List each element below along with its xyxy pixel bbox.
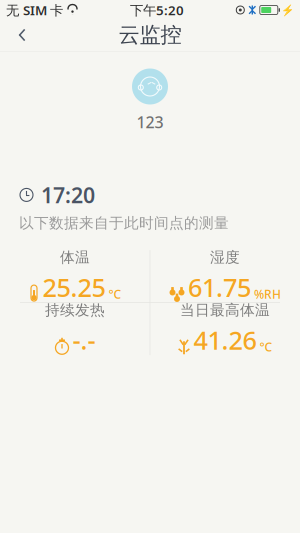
- button[interactable]: 湿度: [150, 248, 300, 304]
- button[interactable]: 持续发热: [0, 301, 150, 357]
- staticText: 17:20: [41, 181, 95, 209]
- button[interactable]: 当日最高体温: [150, 301, 300, 357]
- staticText: °C: [108, 286, 121, 302]
- staticText: °C: [259, 339, 272, 355]
- staticText: 下午5:20: [130, 1, 184, 19]
- staticText: 123: [136, 111, 163, 133]
- staticText: 云监控: [118, 22, 181, 48]
- staticText: 41.26: [193, 323, 256, 357]
- staticText: %RH: [254, 286, 281, 302]
- staticText: ⚡: [281, 4, 294, 16]
- button[interactable]: 返回: [0, 20, 44, 50]
- staticText: 当日最高体温: [180, 301, 270, 319]
- staticText: 持续发热: [45, 301, 105, 319]
- staticText: 体温: [60, 248, 90, 266]
- staticText: 25.25: [42, 270, 105, 304]
- staticText: 无 SIM 卡: [6, 1, 63, 19]
- button[interactable]: 体温: [0, 248, 150, 304]
- staticText: 61.75: [188, 270, 251, 304]
- staticText: 湿度: [210, 248, 240, 266]
- staticText: -.-: [72, 323, 95, 357]
- button[interactable]: 设备 123: [0, 68, 300, 133]
- staticText: 以下数据来自于此时间点的测量: [19, 214, 229, 232]
